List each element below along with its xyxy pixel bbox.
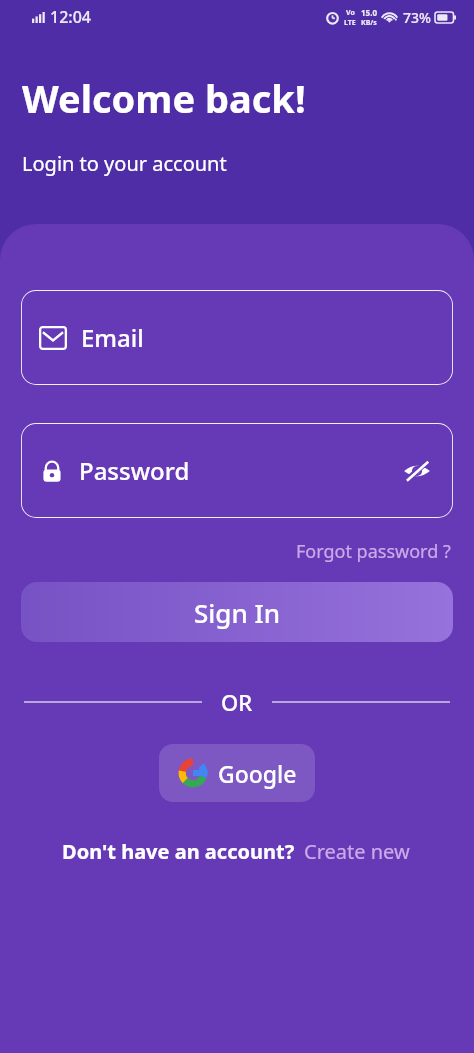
staticText: Google (218, 758, 297, 789)
staticText: Sign In (194, 595, 281, 630)
staticText: Email (81, 321, 144, 354)
staticText: KB/s (361, 18, 377, 28)
staticText: Vo (346, 8, 355, 18)
staticText: 15.0 (361, 7, 377, 18)
staticText: Forgot password ? (296, 539, 451, 564)
staticText: Login to your account (22, 150, 227, 177)
button[interactable]: Create new (302, 835, 412, 868)
staticText: Don't have an account? (62, 838, 295, 865)
staticText: OR (221, 687, 253, 717)
staticText: Create new (304, 838, 410, 865)
button[interactable]: Show password (399, 453, 435, 489)
button[interactable]: Sign In (21, 582, 453, 642)
button[interactable]: Google (159, 744, 315, 802)
staticText: Password (79, 454, 190, 487)
button[interactable]: Password (21, 423, 453, 518)
staticText: LTE (344, 18, 356, 28)
button[interactable]: Forgot password ? (294, 536, 453, 567)
staticText: 12:04 (50, 6, 91, 28)
staticText: 73% (403, 8, 431, 27)
staticText: Welcome back! (22, 72, 306, 124)
button[interactable]: Email (21, 290, 453, 385)
